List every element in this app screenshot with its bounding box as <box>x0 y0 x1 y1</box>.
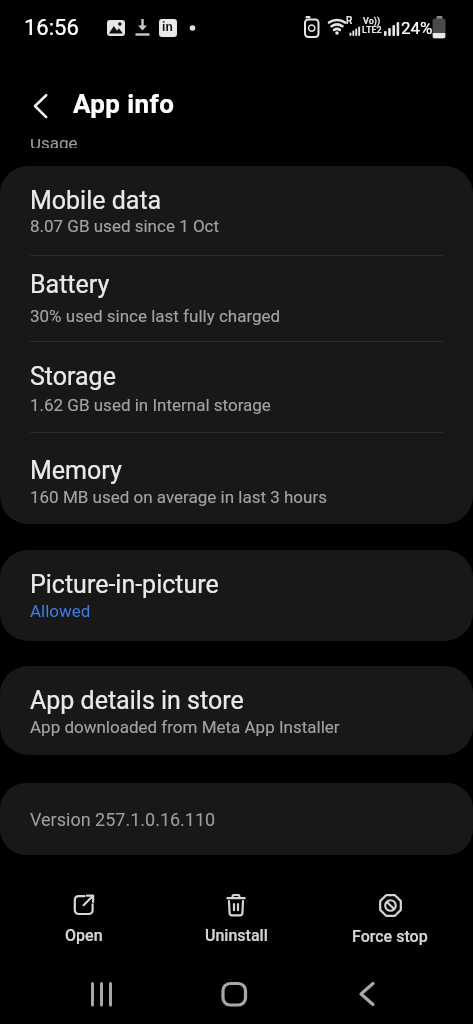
staticText: 24% <box>401 18 433 38</box>
staticText: 8.07 GB used since 1 Oct <box>30 216 220 236</box>
button[interactable] <box>0 341 473 432</box>
staticText: 1.62 GB used in Internal storage <box>30 395 271 415</box>
button[interactable]: Force stop <box>330 890 450 952</box>
staticText: Allowed <box>30 601 91 621</box>
staticText: Mobile data <box>30 186 162 215</box>
staticText: Picture-in-picture <box>30 570 219 599</box>
staticText: in <box>162 19 173 34</box>
button[interactable] <box>0 255 473 341</box>
staticText: Usage <box>30 139 78 148</box>
staticText: Force stop <box>352 927 428 946</box>
button[interactable]: Open <box>24 890 144 951</box>
button[interactable]: Uninstall <box>176 890 296 951</box>
staticText: Uninstall <box>205 926 268 945</box>
staticText: App downloaded from Meta App Installer <box>30 717 340 737</box>
button[interactable] <box>26 90 60 122</box>
button[interactable]: Picture-in-picture <box>0 550 473 641</box>
staticText: Vo)) <box>363 16 381 27</box>
staticText: Storage <box>30 362 116 391</box>
button[interactable] <box>349 976 385 1012</box>
staticText: 160 MB used on average in last 3 hours <box>30 487 327 507</box>
button[interactable] <box>0 432 473 524</box>
staticText: LTE2 <box>362 25 382 36</box>
staticText: Battery <box>30 270 110 299</box>
button[interactable] <box>84 976 120 1012</box>
staticText: 30% used since last fully charged <box>30 306 281 326</box>
staticText: App info <box>73 89 175 119</box>
button[interactable] <box>216 976 252 1012</box>
staticText: 16:56 <box>24 15 79 41</box>
staticText: Memory <box>30 456 122 485</box>
button[interactable]: App details in store <box>0 666 473 755</box>
staticText: App details in store <box>30 686 244 715</box>
staticText: R <box>346 15 353 27</box>
staticText: Version 257.1.0.16.110 <box>30 809 216 830</box>
staticText: Open <box>65 926 103 945</box>
button[interactable] <box>0 166 473 255</box>
